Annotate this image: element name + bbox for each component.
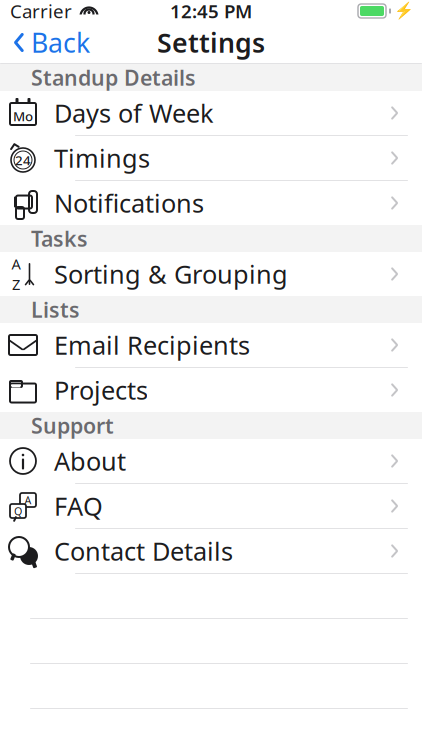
button[interactable]: 24 [0,136,422,180]
staticText: Settings [157,25,265,60]
button[interactable]: Notifications [0,181,422,225]
staticText: Notifications [54,186,204,220]
staticText: About [54,444,126,478]
button[interactable]: A [0,252,422,296]
staticText: Q [14,504,22,518]
button[interactable]: Back [0,19,90,66]
staticText: Support [31,411,114,440]
staticText: Mo [13,107,33,125]
staticText: Standup Details [31,63,196,92]
staticText: A [11,254,20,273]
button[interactable]: Email Recipients [0,323,422,367]
staticText: Z [12,274,20,294]
staticText: Carrier [10,0,72,23]
button[interactable]: Projects [0,368,422,412]
button[interactable]: Contact Details [0,529,422,573]
staticText: Email Recipients [54,328,250,362]
staticText: A [24,493,31,507]
staticText: Tasks [31,224,88,253]
staticText: Projects [54,373,148,407]
staticText: Days of Week [54,96,214,130]
staticText: 24 [15,151,31,169]
staticText: Contact Details [54,534,233,568]
button[interactable]: Mo [0,91,422,135]
staticText: 12:45 PM [170,0,252,23]
staticText: Sorting & Grouping [54,257,288,291]
button[interactable]: About [0,439,422,483]
staticText: FAQ [54,489,103,523]
staticText: ⚡ [394,2,414,20]
staticText: Timings [54,141,150,175]
button[interactable]: A [0,484,422,528]
staticText: Lists [31,295,80,324]
staticText: Back [31,25,90,60]
